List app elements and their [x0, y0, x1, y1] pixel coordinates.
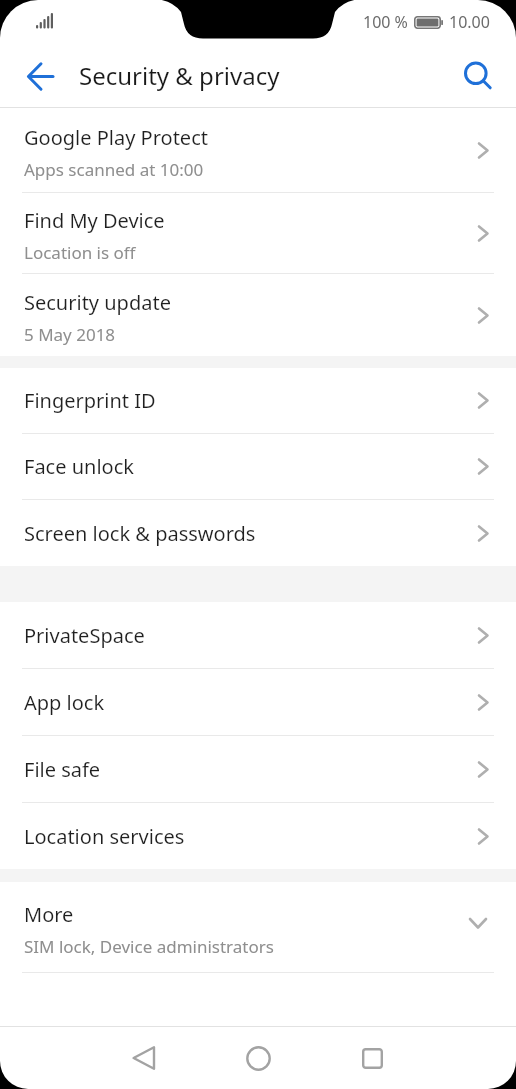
staticText: PrivateSpace — [24, 622, 145, 649]
staticText: File safe — [24, 756, 101, 783]
button[interactable]: Screen lock & passwords — [0, 500, 516, 566]
button[interactable] — [456, 54, 500, 98]
staticText: Screen lock & passwords — [24, 520, 256, 547]
button[interactable] — [315, 1027, 429, 1089]
button[interactable]: Find My Device — [0, 193, 516, 273]
staticText: SIM lock, Device administrators — [24, 935, 274, 958]
staticText: More — [24, 901, 74, 928]
staticText: 5 May 2018 — [24, 323, 116, 346]
button[interactable]: PrivateSpace — [0, 602, 516, 668]
button[interactable]: Security update — [0, 274, 516, 356]
button[interactable] — [201, 1027, 315, 1089]
button[interactable]: More — [0, 882, 516, 972]
button[interactable]: Fingerprint ID — [0, 368, 516, 433]
staticText: Find My Device — [24, 207, 165, 234]
staticText: Location is off — [24, 241, 136, 264]
staticText: App lock — [24, 689, 105, 716]
button[interactable]: Face unlock — [0, 434, 516, 499]
button[interactable] — [87, 1027, 201, 1089]
staticText: 100 % — [363, 11, 408, 33]
staticText: Security & privacy — [79, 59, 280, 92]
button[interactable] — [18, 54, 62, 98]
staticText: Fingerprint ID — [24, 387, 156, 414]
button[interactable]: App lock — [0, 669, 516, 735]
staticText: Face unlock — [24, 453, 134, 480]
staticText: Google Play Protect — [24, 124, 208, 151]
staticText: Apps scanned at 10:00 — [24, 158, 204, 181]
button[interactable]: File safe — [0, 736, 516, 802]
button[interactable]: Google Play Protect — [0, 108, 516, 192]
staticText: Security update — [24, 289, 171, 316]
staticText: 10.00 — [449, 11, 490, 33]
staticText: Location services — [24, 823, 185, 850]
button[interactable]: Location services — [0, 803, 516, 869]
